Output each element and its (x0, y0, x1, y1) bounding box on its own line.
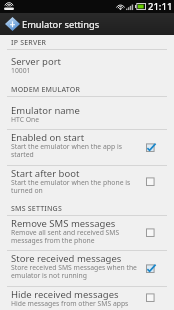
staticText: Emulator name (11, 104, 80, 117)
staticText: Remove SMS messages (11, 217, 116, 230)
staticText: Hide messages from other SMS apps (11, 299, 129, 308)
staticText: SMS SETTINGS (11, 204, 62, 214)
button[interactable]: Start after boot (0, 166, 174, 199)
button[interactable]: Enabled on start (0, 130, 174, 166)
staticText: MODEM EMULATOR (11, 85, 81, 95)
staticText: Emulator settings (22, 18, 100, 31)
staticText: 10001 (11, 66, 31, 75)
staticText: Store received SMS messages when the emu… (11, 263, 138, 280)
staticText: 21:11 (148, 0, 173, 13)
button[interactable]: Emulator name (0, 97, 174, 130)
staticText: Enabled on start (11, 131, 85, 144)
staticText: Hide received messages (11, 288, 119, 301)
button[interactable]: Remove SMS messages (0, 216, 174, 251)
staticText: IP SERVER (11, 38, 47, 48)
staticText: Start the emulator when the phone is tur… (11, 178, 138, 195)
button[interactable]: Hide received messages (0, 287, 174, 310)
staticText: Remove all sent and received SMS message… (11, 228, 138, 245)
staticText: Start the emulator when the app is start… (11, 142, 138, 159)
staticText: Start after boot (11, 167, 80, 180)
button[interactable]: Store received messages (0, 251, 174, 287)
other: App icon (5, 17, 20, 31)
button[interactable]: Server port (0, 50, 174, 79)
staticText: HTC One (11, 115, 40, 124)
staticText: Store received messages (11, 252, 122, 265)
staticText: Server port (11, 55, 62, 68)
button[interactable]: App icon (0, 13, 174, 35)
